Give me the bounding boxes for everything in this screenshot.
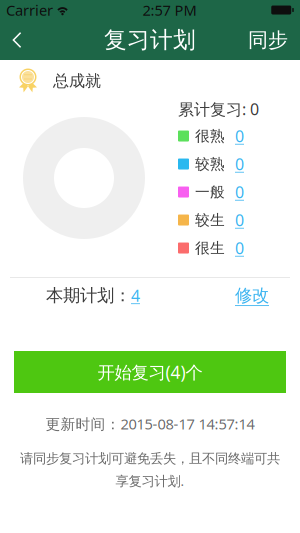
staticText: 较熟 bbox=[195, 155, 225, 173]
staticText: 复习计划 bbox=[104, 26, 196, 54]
staticText: 更新时间：2015-08-17 14:57:14 bbox=[45, 414, 254, 433]
staticText: 0 bbox=[235, 181, 244, 203]
button[interactable]: 0 bbox=[235, 237, 244, 259]
button[interactable]: 0 bbox=[235, 153, 244, 175]
staticText: Carrier bbox=[6, 0, 53, 20]
staticText: 0 bbox=[235, 209, 244, 231]
staticText: 总成就 bbox=[53, 71, 101, 91]
staticText: 很生 bbox=[195, 239, 225, 257]
staticText: 请同步复习计划可避免丢失，且不同终端可共 bbox=[20, 450, 280, 467]
staticText: 0 bbox=[235, 125, 244, 147]
staticText: 2:57 PM bbox=[142, 0, 196, 20]
staticText: 很熟 bbox=[195, 127, 225, 145]
button[interactable]: 0 bbox=[235, 209, 244, 231]
staticText: 一般 bbox=[195, 183, 225, 201]
staticText: 0 bbox=[235, 153, 244, 175]
staticText: 同步 bbox=[248, 28, 288, 52]
staticText: 4 bbox=[131, 285, 140, 306]
staticText: 较生 bbox=[195, 211, 225, 229]
staticText: 本期计划： bbox=[46, 285, 131, 306]
staticText: 累计复习: 0 bbox=[178, 98, 259, 120]
staticText: 修改 bbox=[235, 285, 269, 306]
button[interactable]: Back bbox=[0, 20, 52, 60]
button[interactable]: 修改 bbox=[235, 285, 269, 306]
button[interactable]: 0 bbox=[235, 125, 244, 147]
staticText: 享复习计划. bbox=[115, 472, 184, 490]
staticText: 开始复习(4)个 bbox=[97, 360, 202, 383]
button[interactable]: 4 bbox=[131, 285, 140, 306]
button[interactable]: 0 bbox=[235, 181, 244, 203]
staticText: 0 bbox=[235, 237, 244, 259]
button[interactable]: 同步 bbox=[240, 20, 300, 60]
button[interactable]: 开始复习(4)个 bbox=[14, 351, 286, 393]
